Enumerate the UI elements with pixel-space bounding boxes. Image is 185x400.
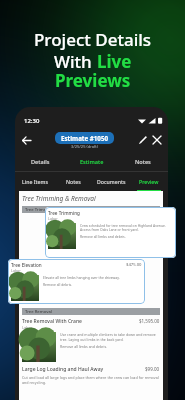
staticText: Line Items bbox=[22, 178, 48, 185]
staticText: Crew scheduled for tree removal on Highl… bbox=[80, 223, 173, 232]
staticText: Tree Removal bbox=[25, 309, 52, 315]
button[interactable]: Edit bbox=[136, 133, 150, 147]
button[interactable]: Notes bbox=[54, 172, 92, 191]
staticText: Labor bbox=[22, 325, 33, 330]
staticText: Elevate all tree limbs hanging over the … bbox=[43, 275, 120, 280]
button[interactable]: Preview bbox=[130, 172, 168, 191]
button[interactable]: Estimate #1050 bbox=[55, 132, 114, 149]
staticText: Remove all limbs and debris. bbox=[60, 344, 108, 349]
button[interactable]: Documents bbox=[92, 172, 130, 191]
staticText: Documents bbox=[97, 178, 126, 185]
button[interactable]: Line Items bbox=[15, 172, 54, 191]
button[interactable]: Close bbox=[150, 133, 164, 147]
staticText: Large Log Loading and Haul Away bbox=[22, 366, 104, 373]
staticText: Project Details bbox=[34, 28, 152, 51]
staticText: Notes bbox=[66, 178, 81, 185]
staticText: 12:30 bbox=[24, 117, 40, 125]
staticText: Remove all debris. bbox=[43, 282, 73, 287]
button[interactable]: Tree Elevation bbox=[8, 259, 145, 304]
staticText: Labor bbox=[11, 268, 21, 273]
staticText: 3/25/25 (draft) bbox=[71, 144, 98, 149]
staticText: Previews bbox=[55, 69, 131, 92]
staticText: Tree Trimming bbox=[48, 210, 80, 216]
staticText: Estimate bbox=[80, 158, 104, 166]
staticText: Tree Elevation bbox=[11, 262, 42, 268]
staticText: Use crane and multiple climbers to take … bbox=[60, 332, 160, 342]
staticText: Remove all limbs and debris. bbox=[80, 234, 126, 239]
staticText: Labor bbox=[48, 216, 58, 221]
staticText: With bbox=[54, 50, 97, 73]
staticText: $1,595.00 bbox=[139, 318, 160, 324]
staticText: Live bbox=[97, 50, 132, 73]
staticText: $99.00 bbox=[145, 366, 160, 372]
button[interactable]: Notes bbox=[117, 152, 168, 171]
button[interactable]: Estimate bbox=[66, 152, 117, 171]
staticText: Notes bbox=[135, 158, 151, 166]
staticText: Preview bbox=[139, 178, 159, 185]
staticText: Estimate #1050 bbox=[61, 134, 108, 142]
button[interactable]: Back bbox=[18, 132, 34, 148]
staticText: Tree Trimming & Removal bbox=[22, 194, 96, 203]
staticText: Cut and load all large logs and place th… bbox=[22, 375, 160, 385]
staticText: Tree Removal With Crane bbox=[22, 318, 82, 325]
staticText: Details bbox=[31, 158, 50, 166]
staticText: Tree Trimming bbox=[25, 207, 55, 213]
button[interactable]: Details bbox=[15, 152, 66, 171]
button[interactable]: Tree Trimming bbox=[45, 207, 176, 258]
staticText: $475.00 bbox=[126, 262, 142, 268]
